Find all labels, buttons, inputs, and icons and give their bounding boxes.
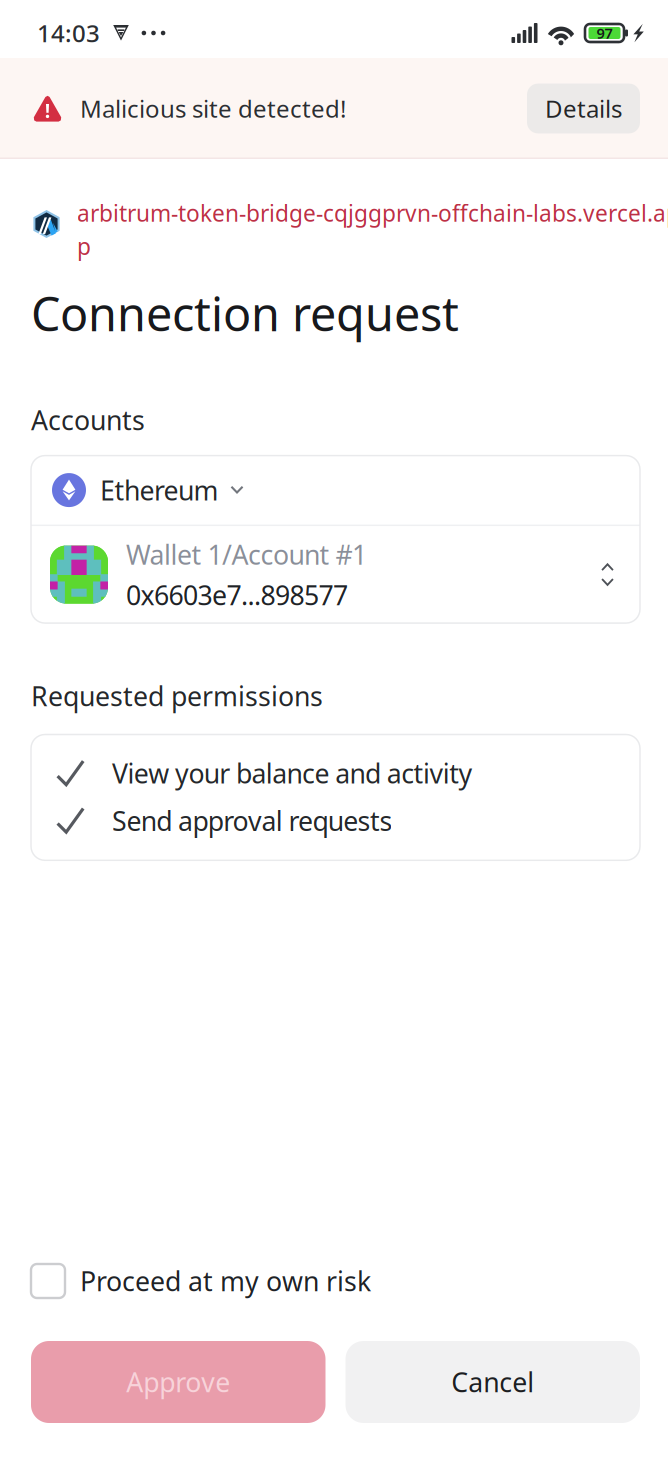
staticText: Malicious site detected! [80,93,346,124]
staticText: Wallet 1/Account #1 [126,537,367,572]
button[interactable]: Proceed at my own risk [31,1260,640,1302]
button[interactable]: Approve [31,1341,325,1423]
staticText: p [77,231,91,261]
staticText: Approve [126,1364,230,1400]
button[interactable]: Cancel [345,1341,640,1423]
staticText: 14:03 [37,17,100,49]
staticText: Accounts [31,402,145,438]
staticText: Details [545,93,622,124]
button[interactable]: Details [527,84,640,133]
staticText: Send approval requests [112,803,392,838]
staticText: Proceed at my own risk [80,1263,371,1299]
staticText: 0x6603e7...898577 [126,577,348,612]
staticText: 97 [596,23,612,43]
button[interactable]: Wallet 1/Account #1 [31,526,640,623]
staticText: Connection request [31,282,459,344]
staticText: View your balance and activity [112,755,473,791]
staticText: arbitrum-token-bridge-cqjggprvn-offchain… [77,198,668,228]
button[interactable]: Ethereum [31,456,640,525]
staticText: Requested permissions [31,678,323,713]
staticText: Cancel [451,1364,534,1400]
staticText: Ethereum [100,472,218,508]
